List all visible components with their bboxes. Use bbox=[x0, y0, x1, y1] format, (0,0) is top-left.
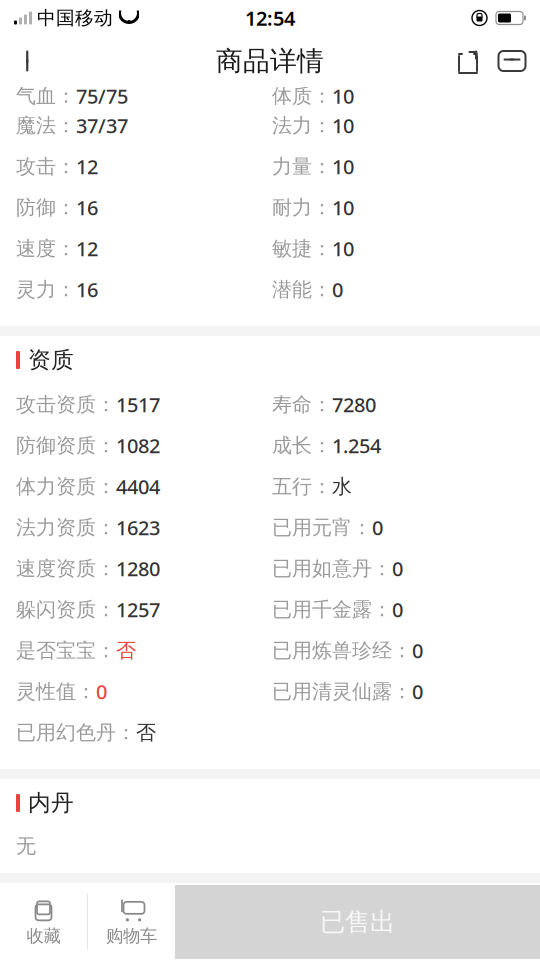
staticText: 体力资质： bbox=[16, 474, 116, 499]
staticText: 10 bbox=[332, 83, 354, 109]
staticText: 1623 bbox=[116, 514, 160, 541]
button[interactable]: 分享 bbox=[446, 35, 490, 87]
staticText: 0 bbox=[412, 637, 423, 664]
button[interactable]: 已售出 bbox=[175, 885, 540, 959]
staticText: 体质： bbox=[272, 84, 332, 108]
staticText: 成长： bbox=[272, 433, 332, 458]
staticText: 躲闪资质： bbox=[16, 597, 116, 622]
staticText: 敏捷： bbox=[272, 236, 332, 261]
staticText: 10 bbox=[332, 112, 354, 139]
staticText: 灵力： bbox=[16, 277, 76, 302]
staticText: 1517 bbox=[116, 391, 160, 418]
staticText: 10 bbox=[332, 235, 354, 262]
staticText: 10 bbox=[332, 194, 354, 221]
staticText: 防御： bbox=[16, 195, 76, 220]
staticText: 已用千金露： bbox=[272, 597, 392, 622]
button[interactable]: 收藏 bbox=[0, 885, 87, 959]
staticText: 商品详情 bbox=[216, 45, 324, 77]
staticText: 0 bbox=[96, 678, 107, 705]
staticText: 7280 bbox=[332, 391, 376, 418]
staticText: 水 bbox=[332, 474, 352, 499]
staticText: 寿命： bbox=[272, 392, 332, 417]
staticText: 五行： bbox=[272, 474, 332, 499]
staticText: 0 bbox=[392, 555, 403, 582]
staticText: 1280 bbox=[116, 555, 160, 582]
staticText: 收藏 bbox=[26, 925, 60, 947]
staticText: 防御资质： bbox=[16, 433, 116, 458]
staticText: 攻击资质： bbox=[16, 392, 116, 417]
staticText: 0 bbox=[372, 514, 383, 541]
staticText: 魔法： bbox=[16, 113, 76, 138]
staticText: 已用炼兽珍经： bbox=[272, 638, 412, 663]
button[interactable]: 返回 bbox=[6, 35, 52, 87]
staticText: 已用清灵仙露： bbox=[272, 679, 412, 704]
staticText: 0 bbox=[332, 276, 343, 303]
staticText: 无 bbox=[16, 834, 36, 858]
button[interactable]: 私信 bbox=[490, 35, 534, 87]
staticText: 力量： bbox=[272, 154, 332, 179]
staticText: 1257 bbox=[116, 596, 160, 623]
staticText: 已用元宵： bbox=[272, 515, 372, 540]
staticText: 已售出 bbox=[320, 906, 395, 937]
staticText: 0 bbox=[392, 596, 403, 623]
staticText: 12 bbox=[76, 235, 98, 262]
staticText: 16 bbox=[76, 194, 98, 221]
staticText: 1082 bbox=[116, 432, 160, 459]
staticText: 4404 bbox=[116, 473, 160, 500]
staticText: 12 bbox=[76, 153, 98, 180]
staticText: 0 bbox=[412, 678, 423, 705]
staticText: 否 bbox=[116, 638, 136, 663]
staticText: 购物车 bbox=[106, 925, 157, 947]
staticText: 攻击： bbox=[16, 154, 76, 179]
staticText: 12:54 bbox=[245, 5, 295, 31]
staticText: 灵性值： bbox=[16, 679, 96, 704]
staticText: 是否宝宝： bbox=[16, 638, 116, 663]
staticText: 速度： bbox=[16, 236, 76, 261]
staticText: 法力资质： bbox=[16, 515, 116, 540]
staticText: 耐力： bbox=[272, 195, 332, 220]
staticText: 已用如意丹： bbox=[272, 556, 392, 581]
staticText: 潜能： bbox=[272, 277, 332, 302]
staticText: 10 bbox=[332, 153, 354, 180]
staticText: 速度资质： bbox=[16, 556, 116, 581]
staticText: 中国移动 bbox=[37, 6, 113, 29]
staticText: 1.254 bbox=[332, 432, 381, 459]
staticText: 16 bbox=[76, 276, 98, 303]
button[interactable]: 购物车 bbox=[88, 885, 175, 959]
staticText: 否 bbox=[136, 720, 156, 745]
staticText: 法力： bbox=[272, 113, 332, 138]
staticText: 已用幻色丹： bbox=[16, 720, 136, 745]
staticText: 资质 bbox=[28, 346, 74, 374]
staticText: 气血： bbox=[16, 84, 76, 108]
staticText: 内丹 bbox=[28, 789, 74, 817]
staticText: 37/37 bbox=[76, 112, 128, 139]
staticText: 75/75 bbox=[76, 83, 128, 109]
